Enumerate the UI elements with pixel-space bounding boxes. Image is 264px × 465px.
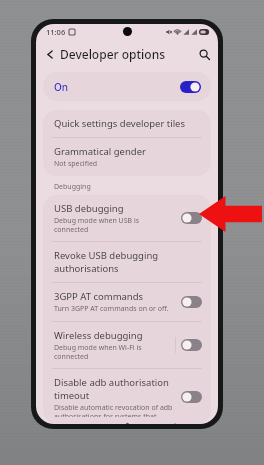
staticText: Disable adb authorisation timeout [54,376,175,402]
staticText: Turn 3GPP AT commands on or off. [54,304,169,314]
staticText: Wireless debugging [54,329,143,342]
button[interactable]: Wireless debugging [43,322,211,368]
staticText: Grammatical gender [54,145,146,158]
button[interactable]: Back [41,45,59,63]
staticText: Debug mode when USB is connected [54,216,175,234]
staticText: USB debugging [54,202,124,215]
staticText: Debugging [54,182,91,192]
other: Toggle off [181,296,202,308]
button[interactable]: Search [195,45,213,63]
staticText: On [54,80,69,94]
staticText: Disable automatic revocation of adb auth… [54,403,175,417]
staticText: 11:06 [46,27,66,37]
staticText: 3GPP AT commands [54,290,144,303]
other: Toggle on [180,81,201,93]
button[interactable]: USB debugging [43,195,211,241]
button[interactable]: Grammatical gender [43,138,211,176]
other: Toggle off [181,391,202,403]
other: Toggle off [181,212,202,224]
staticText: Not specified [54,159,98,169]
button[interactable]: 3GPP AT commands [43,283,211,321]
other: Toggle off [181,339,202,351]
staticText: Developer options [60,46,166,62]
staticText: Quick settings developer tiles [54,117,186,130]
button[interactable]: Disable adb authorisation timeout [43,369,211,424]
button[interactable]: Quick settings developer tiles [43,110,211,137]
staticText: Debug mode when Wi-Fi is connected [54,343,169,361]
button[interactable]: Revoke USB debugging authorisations [43,242,211,282]
staticText: Revoke USB debugging authorisations [54,249,200,275]
button[interactable]: On [43,72,211,101]
